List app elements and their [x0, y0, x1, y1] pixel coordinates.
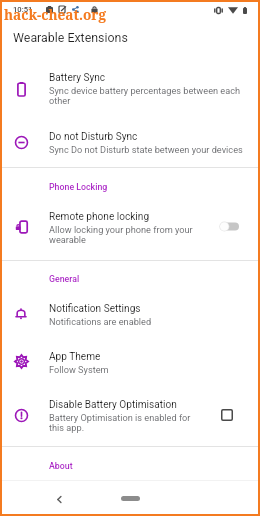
- staticText: Battery Optimisation is enabled for this…: [49, 413, 201, 433]
- staticText: General: [49, 274, 80, 284]
- button[interactable]: About: [2, 461, 258, 479]
- button[interactable]: Do not Disturb Sync: [2, 125, 258, 167]
- button[interactable]: Remote phone locking: [214, 216, 242, 236]
- staticText: Battery Sync: [49, 72, 106, 84]
- button[interactable]: Disable Battery Optimisation: [2, 393, 258, 445]
- button[interactable]: Home: [121, 496, 140, 501]
- staticText: Allow locking your phone from your weara…: [49, 225, 201, 245]
- staticText: 10:51: [13, 5, 33, 14]
- staticText: Remote phone locking: [49, 211, 150, 223]
- button[interactable]: Battery Sync: [2, 66, 258, 118]
- button[interactable]: Phone Locking: [2, 182, 258, 200]
- staticText: About: [49, 461, 73, 471]
- staticText: Disable Battery Optimisation: [49, 399, 177, 411]
- staticText: Follow System: [49, 365, 109, 375]
- button[interactable]: Notification Settings: [2, 297, 258, 339]
- button[interactable]: App Theme: [2, 345, 258, 387]
- button[interactable]: Disable Battery Optimisation: [217, 405, 237, 425]
- staticText: Notifications are enabled: [49, 317, 152, 327]
- staticText: hack-cheat.org: [4, 5, 106, 24]
- staticText: Sync device battery percentages between …: [49, 86, 245, 106]
- staticText: Wearable Extensions: [13, 30, 128, 45]
- staticText: Do not Disturb Sync: [49, 131, 138, 143]
- button[interactable]: Remote phone locking: [2, 205, 258, 257]
- staticText: Notification Settings: [49, 303, 141, 315]
- staticText: Sync Do not Disturb state between your d…: [49, 145, 243, 155]
- staticText: Phone Locking: [49, 182, 108, 192]
- staticText: App Theme: [49, 351, 101, 363]
- button[interactable]: Back: [50, 490, 68, 508]
- button[interactable]: General: [2, 274, 258, 292]
